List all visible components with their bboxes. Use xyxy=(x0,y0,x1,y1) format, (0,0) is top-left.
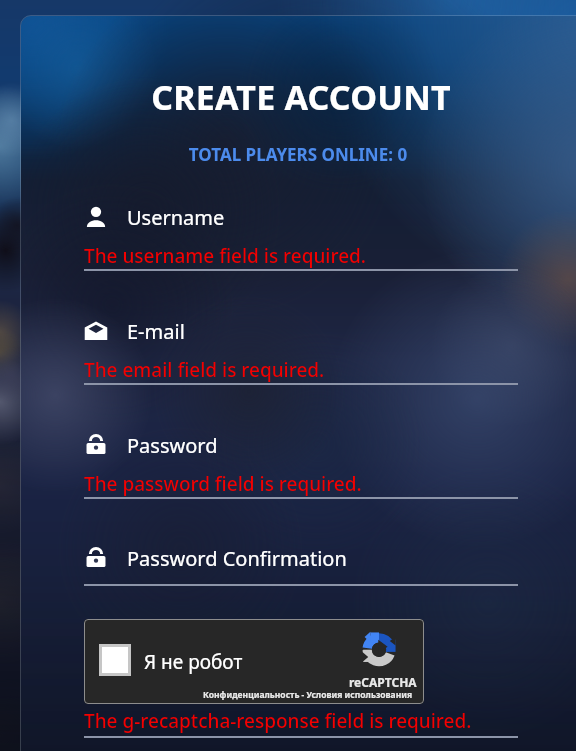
staticText: The username field is required. xyxy=(84,243,366,269)
staticText: Я не робот xyxy=(144,649,243,675)
button[interactable]: E-mail xyxy=(84,315,518,347)
staticText: The password field is required. xyxy=(84,471,362,497)
staticText: E-mail xyxy=(127,318,185,345)
staticText: TOTAL PLAYERS ONLINE: 0 xyxy=(10,143,576,166)
button[interactable]: Username xyxy=(84,201,518,233)
button[interactable]: Password Confirmation xyxy=(84,542,518,574)
staticText: Конфиденциальность - Условия использован… xyxy=(203,689,413,701)
staticText: The g-recaptcha-response field is requir… xyxy=(84,708,472,734)
button[interactable]: I am not a robot checkbox xyxy=(99,644,131,676)
staticText: Username xyxy=(127,204,225,231)
staticText: reCAPTCHA xyxy=(349,674,417,690)
button[interactable]: I am not a robot checkbox xyxy=(84,619,424,704)
staticText: The email field is required. xyxy=(84,357,325,383)
staticText: CREATE ACCOUNT xyxy=(13,74,576,120)
button[interactable]: Password xyxy=(84,429,518,461)
staticText: Password Confirmation xyxy=(127,545,347,572)
staticText: Password xyxy=(127,432,218,459)
